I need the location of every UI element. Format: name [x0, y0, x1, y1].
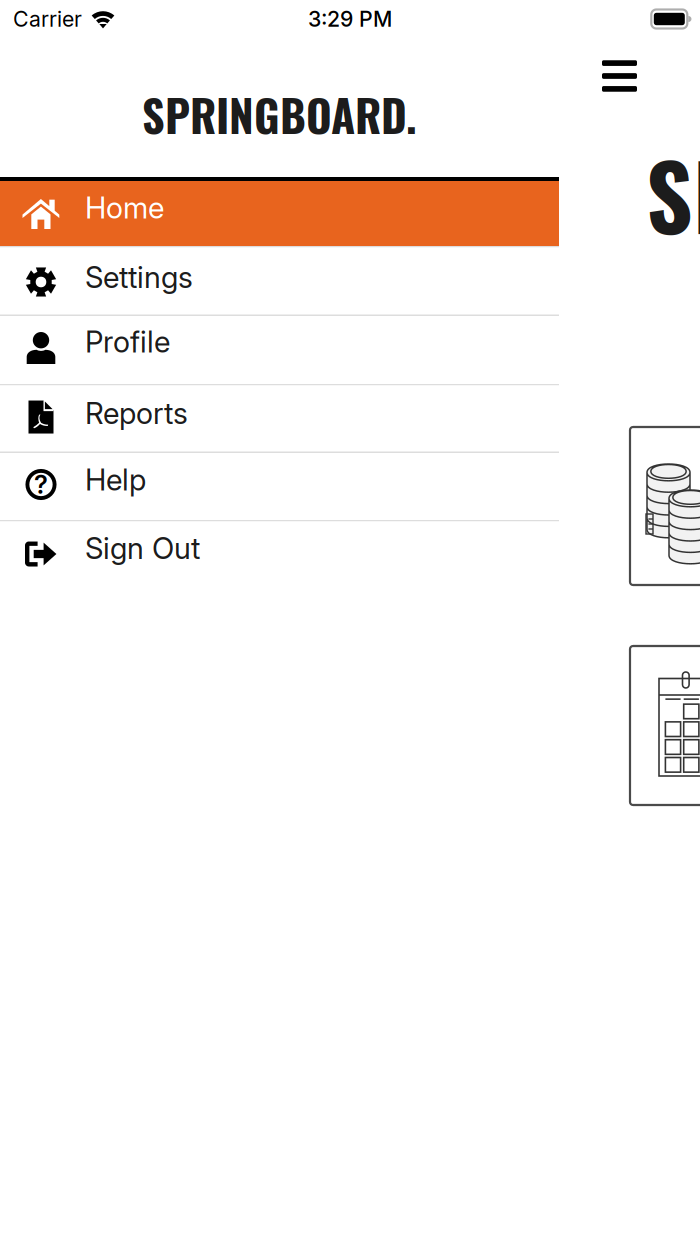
staticText: Help: [85, 462, 146, 497]
staticText: SPRINGBOARD.: [142, 81, 417, 147]
button[interactable]: Settings: [0, 247, 559, 314]
staticText: Reports: [85, 395, 188, 431]
staticText: Home: [85, 190, 164, 225]
staticText: Sign Out: [85, 530, 200, 566]
staticText: SPRINGBOARD.: [646, 126, 700, 260]
staticText: Carrier: [13, 6, 82, 32]
button[interactable]: Sign Out: [0, 521, 559, 586]
staticText: 3:29 PM: [308, 6, 392, 32]
button[interactable]: Profile: [0, 316, 559, 384]
button[interactable]: Home: [0, 181, 559, 246]
staticText: Profile: [85, 324, 170, 359]
button[interactable]: Open menu: [602, 60, 637, 92]
staticText: Settings: [85, 259, 193, 295]
button[interactable]: ?: [0, 453, 559, 520]
staticText: ?: [34, 469, 48, 500]
button[interactable]: Reports: [0, 385, 559, 451]
